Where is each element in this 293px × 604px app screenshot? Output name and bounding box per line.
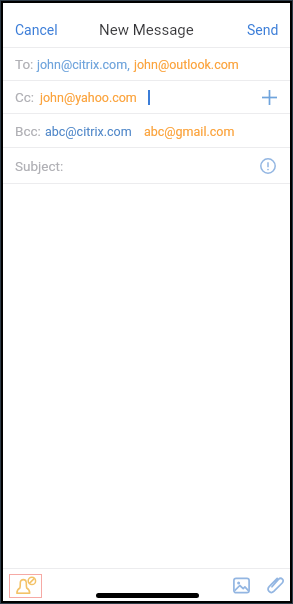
staticText: john@yahoo.com xyxy=(40,90,137,105)
button[interactable]: Insert photo xyxy=(233,577,250,594)
button[interactable]: Subject: xyxy=(3,158,64,174)
button[interactable]: Cancel xyxy=(3,13,70,47)
staticText: abc@citrix.com xyxy=(45,124,132,139)
button[interactable]: Blocked contact xyxy=(9,574,42,598)
staticText: Cancel xyxy=(15,22,58,38)
staticText: john@citrix.com, xyxy=(37,57,130,72)
staticText: To: xyxy=(15,56,34,72)
staticText: abc@gmail.com xyxy=(144,124,235,139)
staticText: New Message xyxy=(99,21,194,39)
button[interactable]: Priority xyxy=(253,152,290,180)
staticText: Bcc: xyxy=(15,123,41,139)
button[interactable]: Bcc: xyxy=(3,114,290,147)
button[interactable]: To: xyxy=(3,48,290,80)
button[interactable]: Cc: xyxy=(15,89,150,105)
staticText: john@outlook.com xyxy=(134,57,239,72)
staticText: Send xyxy=(247,22,279,38)
staticText: Cc: xyxy=(15,89,35,105)
button[interactable]: Attach file xyxy=(266,574,286,594)
button[interactable]: Add recipient xyxy=(254,84,290,111)
button[interactable]: Send xyxy=(236,13,290,47)
